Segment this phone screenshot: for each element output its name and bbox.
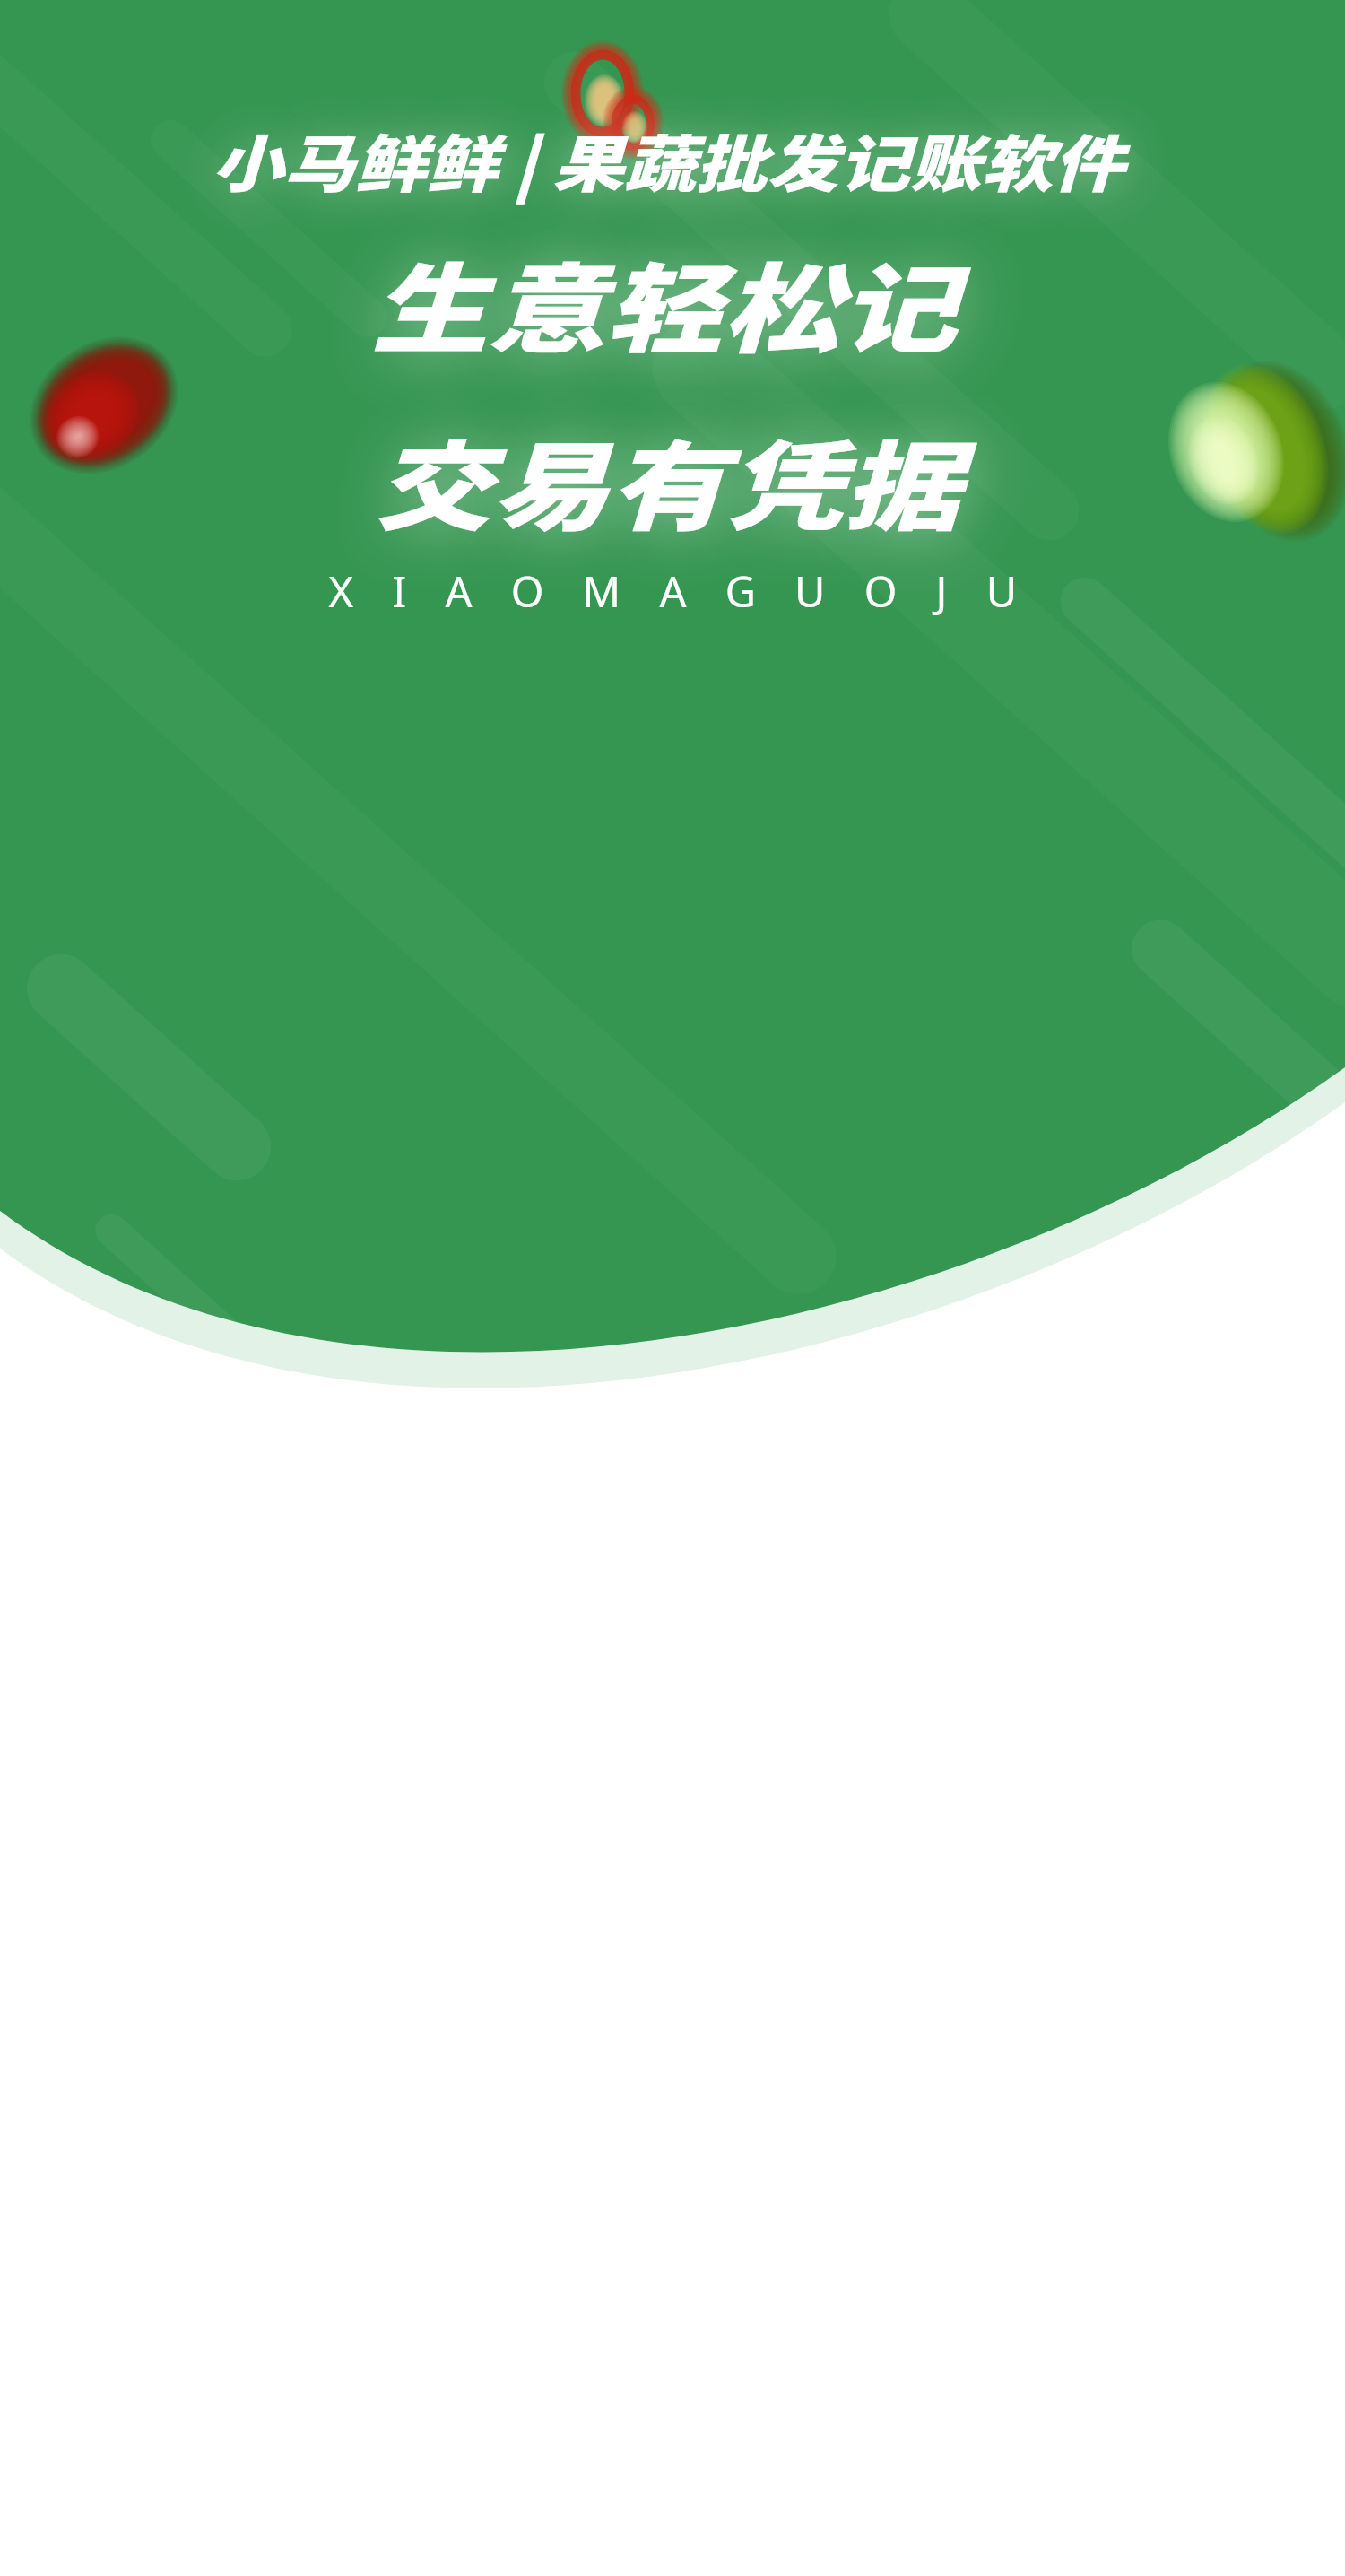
staticText: X I A O M A G U O J U	[328, 562, 1031, 620]
staticText: 交易有凭据	[374, 410, 961, 550]
other: 小马鲜鲜 果蔬批发记账软件 封面插画	[0, 0, 1345, 2576]
staticText: 小马鲜鲜 | 果蔬批发记账软件	[211, 115, 1125, 205]
staticText: 生意轻松记	[371, 232, 957, 372]
button[interactable]: 小马鲜鲜 果蔬批发记账软件 生意轻松记 交易有凭据	[0, 0, 1345, 620]
